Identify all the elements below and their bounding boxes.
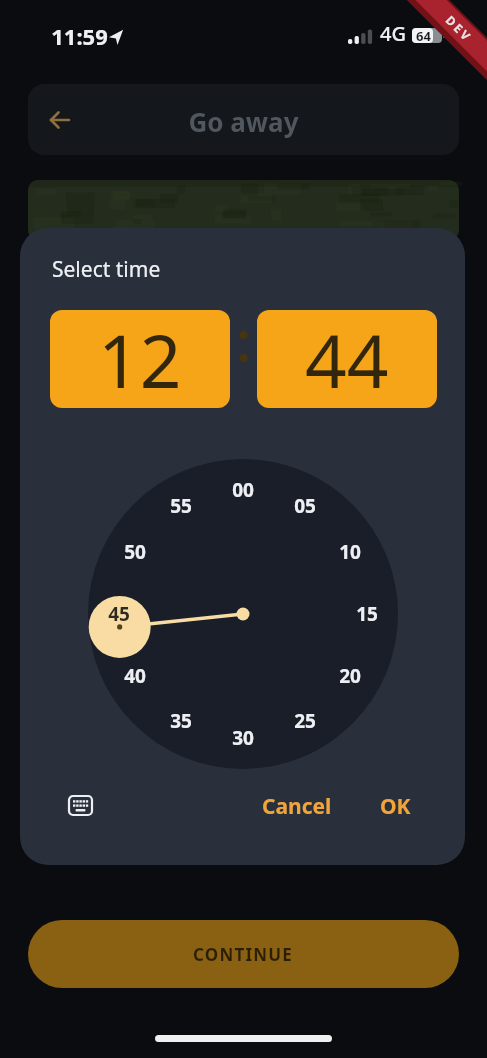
staticText: 4G — [380, 20, 406, 46]
button[interactable] — [28, 84, 459, 155]
button[interactable]: CONTINUE — [28, 920, 459, 988]
staticText: 10 — [339, 539, 361, 565]
staticText: Select time — [52, 255, 161, 284]
staticText: 11:59 — [51, 21, 108, 51]
button[interactable]: 44 — [257, 310, 437, 408]
staticText: 44 — [305, 310, 389, 408]
staticText: 40 — [124, 663, 146, 689]
staticText: 50 — [124, 539, 146, 565]
staticText: DEV — [443, 12, 476, 45]
staticText: 64 — [416, 27, 431, 44]
staticText: 20 — [339, 663, 361, 689]
button[interactable] — [48, 108, 72, 132]
button[interactable] — [69, 796, 92, 815]
staticText: 55 — [170, 493, 192, 519]
staticText: OK — [380, 792, 411, 821]
staticText: 15 — [356, 601, 378, 627]
staticText: 35 — [170, 708, 192, 734]
button[interactable]: Cancel — [256, 791, 338, 821]
button[interactable]: 12 — [50, 310, 230, 408]
staticText: 25 — [294, 708, 316, 734]
staticText: 00 — [232, 477, 254, 503]
staticText: 05 — [294, 493, 316, 519]
staticText: CONTINUE — [193, 943, 294, 966]
staticText: 30 — [232, 725, 254, 751]
staticText: Cancel — [262, 792, 332, 821]
button[interactable]: OK — [370, 791, 420, 821]
staticText: 12 — [98, 310, 182, 408]
staticText: 45 — [108, 601, 130, 627]
staticText: Go away — [188, 104, 299, 139]
